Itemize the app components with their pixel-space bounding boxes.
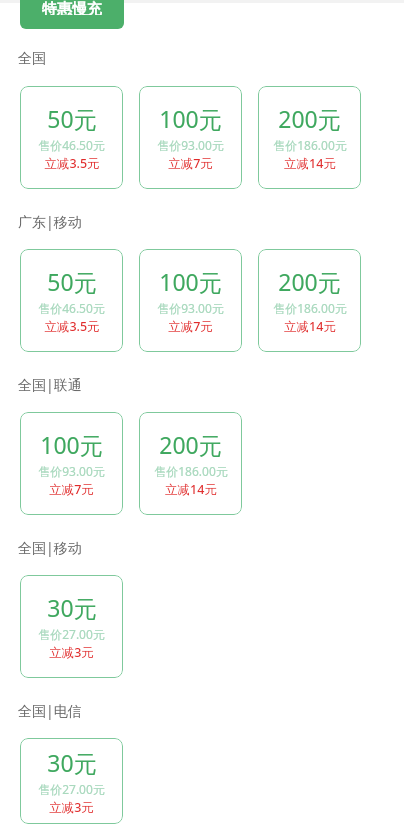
staticText: 100元 (40, 429, 103, 460)
staticText: 售价46.50元 (38, 300, 105, 316)
staticText: 立减3元 (49, 799, 94, 816)
button[interactable]: 100元 (20, 412, 123, 515)
staticText: 立减3.5元 (44, 318, 100, 335)
staticText: 立减14元 (165, 481, 217, 498)
staticText: 特惠慢充 (42, 0, 102, 15)
staticText: 售价93.00元 (157, 300, 224, 316)
staticText: 30元 (47, 747, 97, 778)
staticText: 100元 (159, 103, 222, 134)
staticText: 50元 (47, 103, 97, 134)
staticText: 立减7元 (168, 318, 213, 335)
staticText: 售价186.00元 (273, 300, 347, 316)
staticText: 售价93.00元 (157, 137, 224, 153)
staticText: 200元 (278, 103, 341, 134)
staticText: 售价46.50元 (38, 137, 105, 153)
staticText: 全国|电信 (18, 701, 82, 720)
button[interactable]: 50元 (20, 249, 123, 352)
staticText: 50元 (47, 266, 97, 297)
button[interactable]: 30元 (20, 738, 123, 824)
button[interactable]: 200元 (258, 86, 361, 189)
staticText: 广东|移动 (18, 212, 82, 231)
staticText: 全国|联通 (18, 375, 82, 394)
button[interactable]: 100元 (139, 86, 242, 189)
staticText: 立减14元 (284, 318, 336, 335)
staticText: 立减3元 (49, 644, 94, 661)
staticText: 全国|移动 (18, 538, 82, 557)
staticText: 售价93.00元 (38, 463, 105, 479)
staticText: 100元 (159, 266, 222, 297)
button[interactable]: 200元 (258, 249, 361, 352)
staticText: 售价186.00元 (273, 137, 347, 153)
staticText: 30元 (47, 592, 97, 623)
staticText: 售价27.00元 (38, 626, 105, 642)
button[interactable]: 200元 (139, 412, 242, 515)
staticText: 200元 (159, 429, 222, 460)
staticText: 售价27.00元 (38, 781, 105, 797)
staticText: 立减3.5元 (44, 155, 100, 172)
button[interactable]: 100元 (139, 249, 242, 352)
button[interactable]: 30元 (20, 575, 123, 678)
staticText: 立减7元 (49, 481, 94, 498)
staticText: 全国 (18, 50, 46, 68)
button[interactable]: 特惠慢充 (20, 0, 124, 29)
button[interactable]: 50元 (20, 86, 123, 189)
staticText: 售价186.00元 (154, 463, 228, 479)
staticText: 立减7元 (168, 155, 213, 172)
staticText: 200元 (278, 266, 341, 297)
staticText: 立减14元 (284, 155, 336, 172)
